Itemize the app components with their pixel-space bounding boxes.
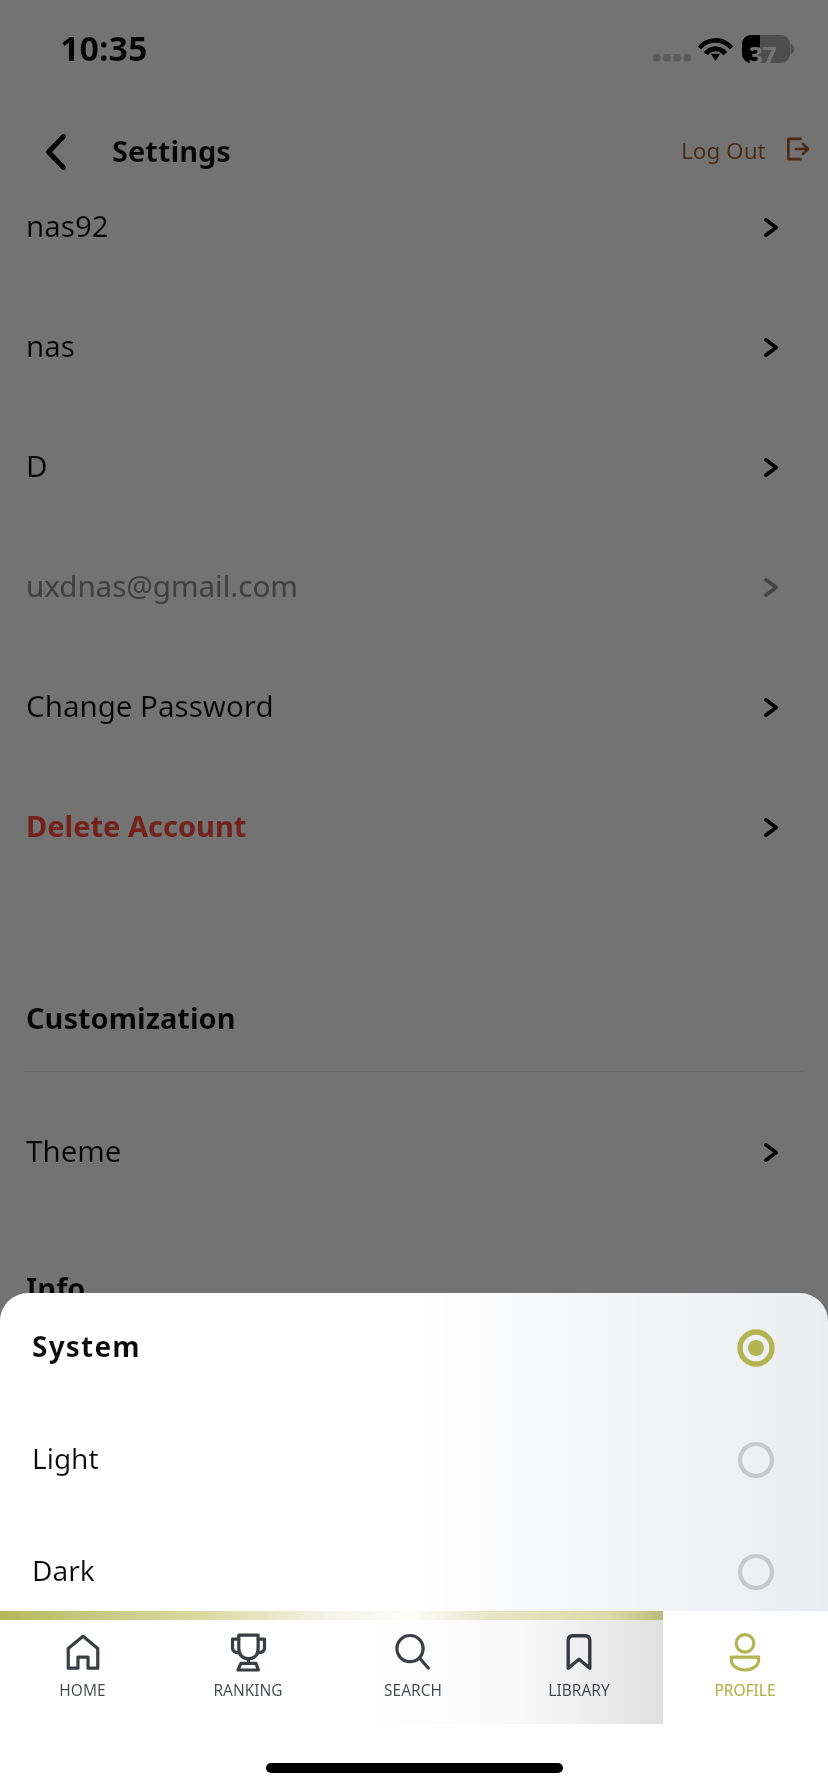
button[interactable]: LIBRARY — [496, 1620, 662, 1792]
button[interactable]: Change Password — [0, 645, 828, 765]
staticText: Change Password — [26, 685, 274, 725]
staticText: Log Out — [681, 135, 766, 166]
button[interactable]: Dark — [0, 1517, 828, 1611]
staticText: PROFILE — [714, 1679, 776, 1700]
button[interactable]: System — [0, 1293, 828, 1405]
button[interactable]: Log Out — [681, 118, 809, 182]
button[interactable]: HOME — [0, 1620, 165, 1792]
staticText: Settings — [112, 131, 231, 170]
button[interactable]: nas92 — [0, 165, 828, 285]
staticText: Customization — [26, 998, 236, 1037]
staticText: Info — [26, 1268, 86, 1307]
staticText: Dark — [32, 1551, 95, 1589]
button[interactable]: SEARCH — [330, 1620, 496, 1792]
staticText: nas92 — [26, 205, 109, 245]
button[interactable]: RANKING — [165, 1620, 330, 1792]
button[interactable]: Theme — [0, 1090, 828, 1210]
button[interactable]: Delete Account — [0, 765, 828, 885]
button[interactable]: PROFILE — [662, 1620, 828, 1792]
staticText: SEARCH — [384, 1679, 442, 1700]
staticText: LIBRARY — [548, 1679, 610, 1700]
staticText: 10:35 — [60, 25, 148, 71]
staticText: RANKING — [213, 1679, 283, 1700]
staticText: Theme — [26, 1130, 122, 1170]
button[interactable]: D — [0, 405, 828, 525]
button[interactable]: nas — [0, 285, 828, 405]
button[interactable]: Back — [25, 121, 87, 183]
button[interactable]: uxdnas@gmail.com — [0, 525, 828, 645]
staticText: D — [26, 445, 48, 485]
staticText: Delete Account — [26, 806, 247, 845]
staticText: Light — [32, 1439, 99, 1477]
staticText: System — [32, 1327, 141, 1365]
staticText: nas — [26, 325, 75, 365]
staticText: 37 — [749, 38, 777, 71]
staticText: uxdnas@gmail.com — [26, 565, 298, 605]
button[interactable]: Light — [0, 1405, 828, 1517]
staticText: HOME — [59, 1679, 106, 1700]
